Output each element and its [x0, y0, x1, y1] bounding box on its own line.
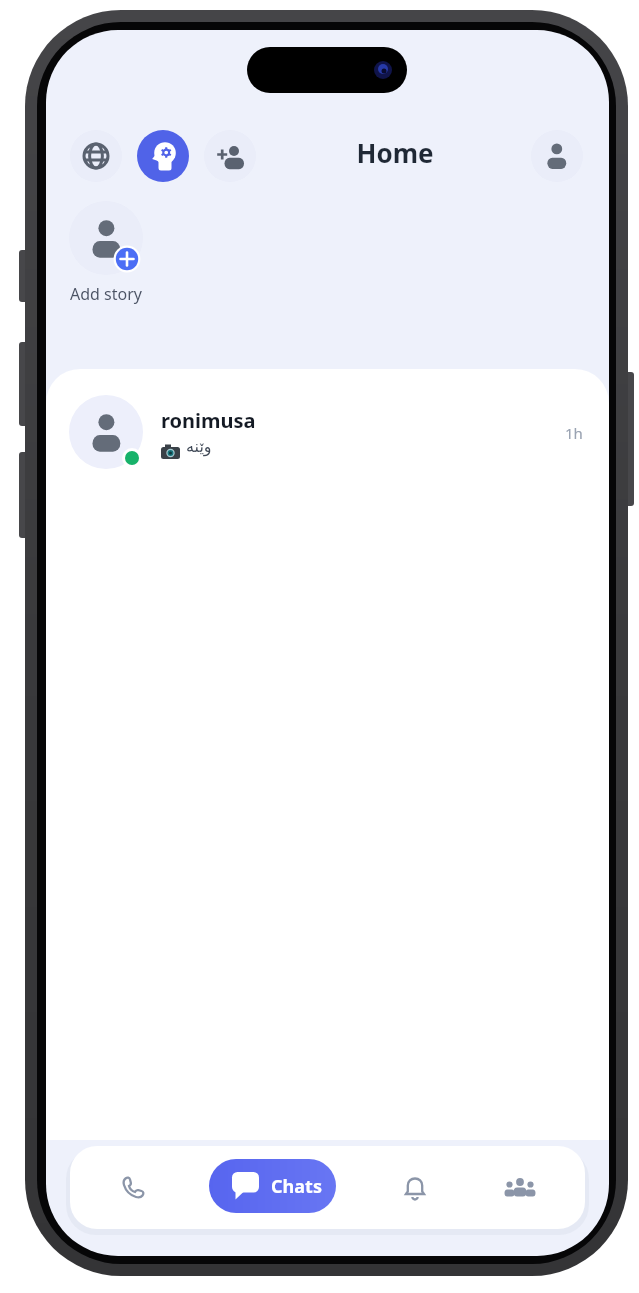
staticText: Chats [271, 1174, 322, 1199]
staticText: Add story [70, 283, 142, 305]
button[interactable] [385, 1160, 445, 1216]
button[interactable]: ronimusa [46, 383, 609, 483]
button[interactable] [490, 1160, 550, 1216]
staticText: Home [356, 135, 434, 170]
button[interactable]: Add story [69, 201, 185, 341]
button[interactable] [531, 130, 583, 182]
staticText: ronimusa [161, 407, 256, 434]
button[interactable] [70, 130, 122, 182]
button[interactable]: Chats [209, 1159, 336, 1213]
staticText: 1h [565, 423, 583, 443]
button[interactable] [204, 130, 256, 182]
button[interactable] [137, 130, 189, 182]
staticText: وێنه [186, 437, 212, 456]
button[interactable] [103, 1160, 163, 1216]
